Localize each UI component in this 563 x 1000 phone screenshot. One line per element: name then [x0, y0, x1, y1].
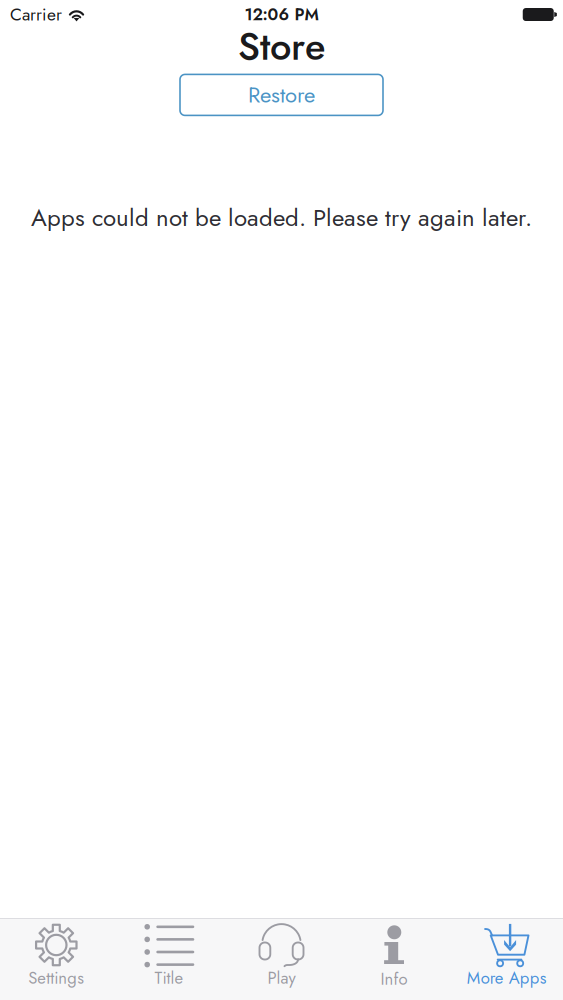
button[interactable]: More Apps: [450, 919, 563, 1000]
button[interactable]: Settings: [0, 919, 113, 1000]
staticText: Settings: [28, 966, 84, 990]
button[interactable]: Info: [338, 919, 450, 1000]
staticText: Play: [267, 966, 295, 990]
staticText: Apps could not be loaded. Please try aga…: [31, 200, 532, 235]
button[interactable]: Title: [113, 919, 225, 1000]
button[interactable]: Restore: [180, 74, 383, 115]
staticText: Restore: [248, 79, 315, 111]
staticText: Carrier: [10, 2, 62, 27]
staticText: Title: [154, 966, 183, 990]
button[interactable]: Play: [225, 919, 338, 1000]
staticText: More Apps: [467, 966, 547, 990]
staticText: Store: [238, 19, 325, 74]
staticText: 12:06 PM: [244, 2, 318, 27]
staticText: Info: [381, 967, 408, 991]
